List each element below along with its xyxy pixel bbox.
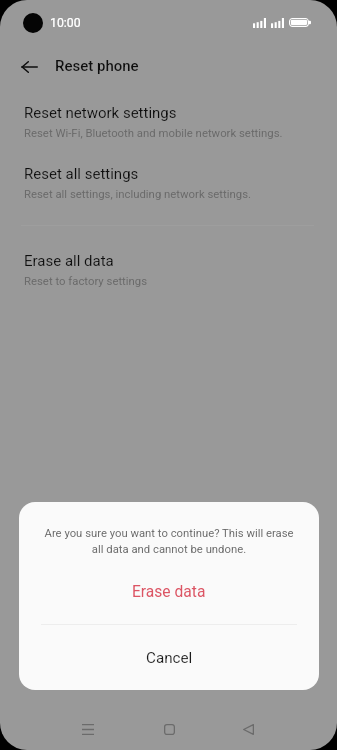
staticText: Erase all data <box>24 252 114 270</box>
button[interactable]: Reset network settings <box>0 98 337 151</box>
staticText: Reset all settings, including network se… <box>24 187 251 200</box>
staticText: Erase data <box>132 583 206 601</box>
staticText: Reset all settings <box>24 165 139 183</box>
button[interactable]: Navigate up <box>7 50 51 83</box>
staticText: Reset network settings <box>24 104 177 122</box>
button[interactable]: Recent apps <box>66 707 110 750</box>
staticText: 10:00 <box>50 16 81 30</box>
button[interactable]: Cancel <box>19 625 319 690</box>
staticText: Reset Wi-Fi, Bluetooth and mobile networ… <box>24 126 283 139</box>
staticText: Cancel <box>146 649 193 667</box>
staticText: Reset phone <box>55 57 139 75</box>
button[interactable]: Erase data <box>19 569 319 614</box>
staticText: Reset to factory settings <box>24 274 148 287</box>
button[interactable]: Home <box>147 707 191 750</box>
button[interactable]: Reset all settings <box>0 159 337 212</box>
staticText: Are you sure you want to continue? This … <box>41 527 297 556</box>
button[interactable]: Back <box>226 707 270 750</box>
button[interactable]: Erase all data <box>0 246 337 299</box>
